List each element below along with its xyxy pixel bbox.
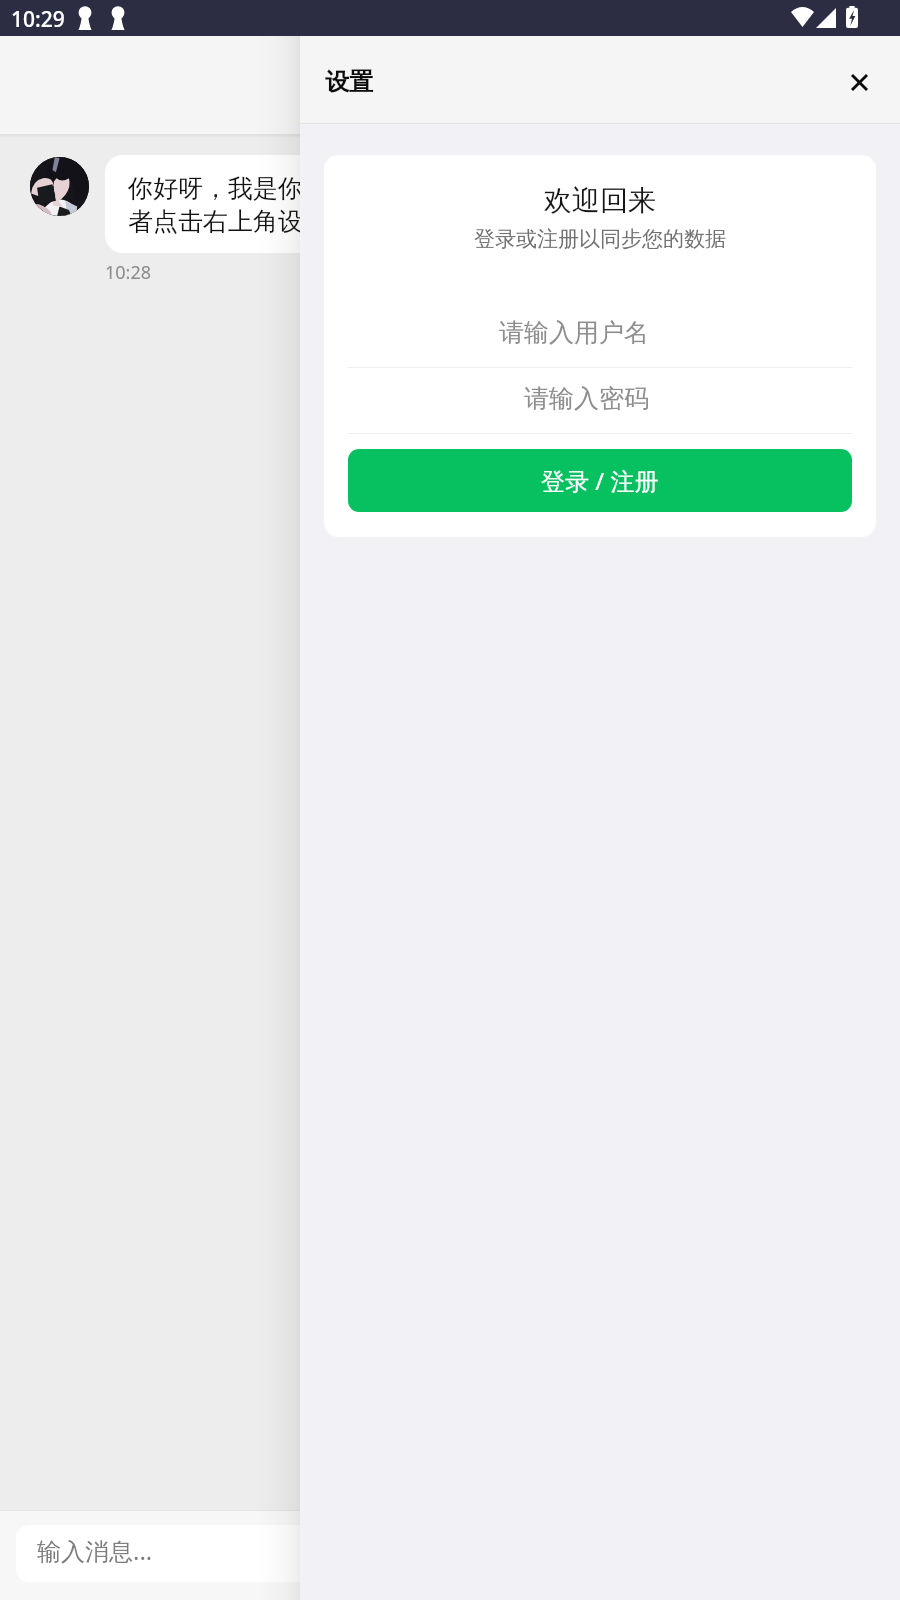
button[interactable]: 登录 / 注册: [348, 449, 852, 512]
button[interactable]: Avatar: [30, 157, 89, 216]
button[interactable]: 请输入用户名: [348, 302, 852, 368]
staticText: 欢迎回来: [324, 183, 876, 218]
staticText: 请输入密码: [324, 383, 649, 414]
staticText: 设置: [325, 67, 373, 97]
staticText: 请输入用户名: [324, 317, 649, 348]
staticText: 登录 / 注册: [541, 464, 659, 497]
button[interactable]: 输入消息...: [16, 1525, 884, 1582]
staticText: 你好呀，我是你的AI智能助手，或 者点击右上角设置按钮登录账号: [128, 170, 503, 238]
button[interactable]: 你好呀，我是你的AI智能助手，或 者点击右上角设置按钮登录账号: [105, 155, 545, 253]
staticText: 10:29: [11, 5, 65, 34]
staticText: 登录或注册以同步您的数据: [324, 226, 876, 252]
button[interactable]: 请输入密码: [348, 368, 852, 434]
staticText: 输入消息...: [37, 1534, 153, 1567]
staticText: 10:28: [105, 260, 152, 285]
button[interactable]: Close settings: [839, 62, 879, 102]
